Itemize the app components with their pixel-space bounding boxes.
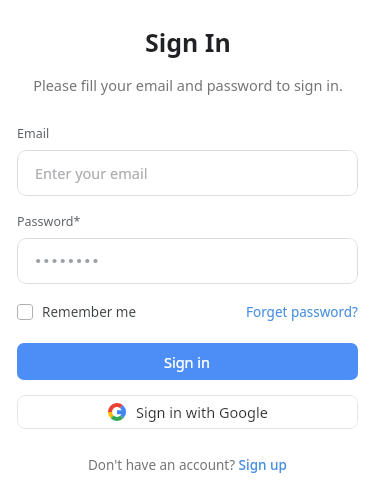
other: Google — [108, 403, 126, 421]
staticText: Password* — [17, 213, 81, 230]
button[interactable]: Forget password? — [246, 300, 358, 324]
staticText: Don't have an account? Sign up — [88, 456, 287, 474]
button[interactable]: Google — [17, 395, 358, 429]
staticText: Email — [17, 125, 50, 142]
staticText: Sign in — [164, 352, 211, 372]
button[interactable]: Sign in — [17, 343, 358, 380]
button[interactable] — [17, 238, 358, 284]
button[interactable]: Enter your email — [17, 150, 358, 196]
button[interactable]: Don't have an account? Sign up — [82, 452, 293, 478]
staticText: Forget password? — [246, 303, 358, 321]
staticText: Please fill your email and password to s… — [33, 75, 343, 95]
staticText: Sign In — [145, 25, 231, 59]
staticText: Remember me — [42, 303, 137, 321]
staticText: Enter your email — [35, 163, 148, 183]
button[interactable]: Remember me — [17, 300, 137, 324]
staticText: Sign in with Google — [136, 402, 268, 422]
